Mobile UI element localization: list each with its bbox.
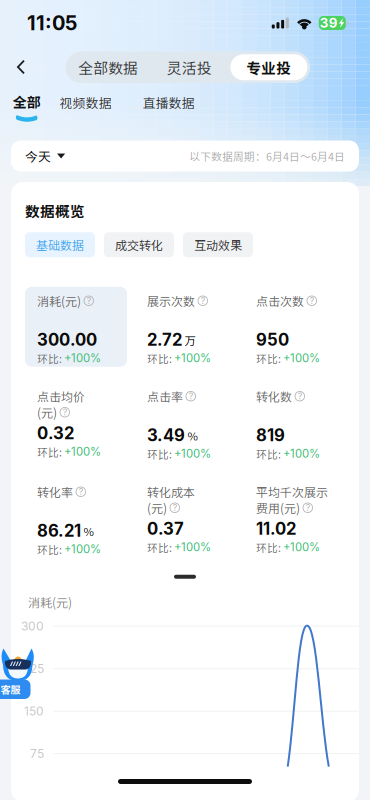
staticText: 成交转化 xyxy=(115,236,163,253)
staticText: ? xyxy=(298,391,302,401)
button[interactable]: 灵活投 xyxy=(148,54,230,80)
staticText: 环比: xyxy=(37,541,64,557)
button[interactable]: 专业投 xyxy=(230,54,307,80)
button[interactable]: 转化成本 xyxy=(147,485,251,558)
staticText: 转化成本 xyxy=(147,483,195,500)
staticText: (元) xyxy=(147,499,167,516)
button[interactable]: 今天 xyxy=(11,140,71,171)
staticText: 点击均价 xyxy=(37,387,85,405)
staticText: ? xyxy=(201,295,205,306)
staticText: 万 xyxy=(184,332,195,348)
staticText: % xyxy=(83,523,93,539)
staticText: 点击率 xyxy=(147,387,183,405)
button[interactable]: 基础数据 xyxy=(25,232,95,257)
staticText: 点击次数 xyxy=(256,292,304,309)
staticText: 互动效果 xyxy=(194,236,242,253)
staticText: 费用(元) xyxy=(256,499,300,516)
staticText: +100% xyxy=(283,540,320,554)
staticText: 平均千次展示 xyxy=(256,483,328,500)
button[interactable]: 点击均价 xyxy=(25,382,127,462)
staticText: 专业投 xyxy=(246,57,291,78)
staticText: 3.49 xyxy=(147,425,185,445)
staticText: 300.00 xyxy=(37,330,97,350)
staticText: +100% xyxy=(64,445,101,459)
staticText: % xyxy=(187,427,197,444)
button[interactable]: 直播数据 xyxy=(143,92,195,112)
staticText: ? xyxy=(79,486,83,497)
staticText: 转化率 xyxy=(37,483,73,500)
staticText: 数据概览 xyxy=(25,200,85,221)
button[interactable]: 消耗(元) xyxy=(25,287,127,367)
staticText: 环比: xyxy=(147,446,174,461)
staticText: 今天 xyxy=(25,147,51,165)
button[interactable]: 展示次数 xyxy=(147,294,251,367)
button[interactable]: 互动效果 xyxy=(183,232,253,257)
staticText: +100% xyxy=(283,447,320,461)
staticText: 150 xyxy=(24,704,44,718)
staticText: 直播数据 xyxy=(143,93,195,112)
staticText: 300 xyxy=(21,619,44,633)
staticText: 环比: xyxy=(256,446,283,461)
staticText: ? xyxy=(63,407,67,417)
staticText: 225 xyxy=(23,661,44,676)
staticText: 环比: xyxy=(256,350,283,366)
staticText: ? xyxy=(87,295,91,306)
button[interactable]: 全部数据 xyxy=(68,54,148,80)
staticText: 39 xyxy=(320,15,338,31)
button[interactable]: 转化数 xyxy=(256,389,356,462)
staticText: +100% xyxy=(174,351,211,365)
staticText: 0.37 xyxy=(147,519,184,539)
staticText: 展示次数 xyxy=(147,292,195,309)
staticText: ? xyxy=(310,295,314,306)
staticText: 819 xyxy=(256,425,285,445)
staticText: ? xyxy=(306,502,310,513)
staticText: 0.32 xyxy=(37,423,74,443)
staticText: 86.21 xyxy=(37,521,81,541)
staticText: +100% xyxy=(283,351,320,365)
staticText: 11:05 xyxy=(27,11,77,35)
button[interactable]: 全部 xyxy=(13,92,41,122)
staticText: ? xyxy=(173,502,177,513)
staticText: 视频数据 xyxy=(60,93,112,112)
staticText: 消耗(元) xyxy=(28,593,72,611)
staticText: 消耗(元) xyxy=(37,292,81,309)
staticText: 全部数据 xyxy=(78,57,138,78)
staticText: 环比: xyxy=(37,350,64,366)
staticText: (元) xyxy=(37,403,57,421)
staticText: +100% xyxy=(64,542,101,556)
staticText: 950 xyxy=(256,330,289,350)
staticText: 基础数据 xyxy=(36,236,84,253)
button[interactable]: 转化率 xyxy=(25,478,127,558)
staticText: +100% xyxy=(174,447,211,461)
staticText: 全部 xyxy=(13,91,41,112)
staticText: +100% xyxy=(64,351,101,365)
button[interactable]: 点击次数 xyxy=(256,294,356,367)
staticText: 以下数据周期：6月4日～6月4日 xyxy=(189,148,345,164)
staticText: 11.02 xyxy=(256,519,296,539)
staticText: ? xyxy=(189,391,193,401)
staticText: 75 xyxy=(30,746,44,761)
button[interactable]: 客服 xyxy=(0,648,36,700)
staticText: 转化数 xyxy=(256,387,292,405)
staticText: 客服 xyxy=(0,682,20,696)
button[interactable]: 返回 xyxy=(4,51,38,82)
staticText: 环比: xyxy=(147,539,174,555)
button[interactable]: 点击率 xyxy=(147,389,251,462)
button[interactable]: 视频数据 xyxy=(60,92,112,112)
staticText: +100% xyxy=(174,540,211,554)
staticText: 环比: xyxy=(256,539,283,555)
staticText: 环比: xyxy=(147,350,174,366)
button[interactable]: 成交转化 xyxy=(104,232,174,257)
staticText: 灵活投 xyxy=(167,57,212,78)
staticText: 2.72 xyxy=(147,330,182,350)
staticText: 环比: xyxy=(37,444,64,459)
button[interactable]: 平均千次展示 xyxy=(256,485,356,558)
